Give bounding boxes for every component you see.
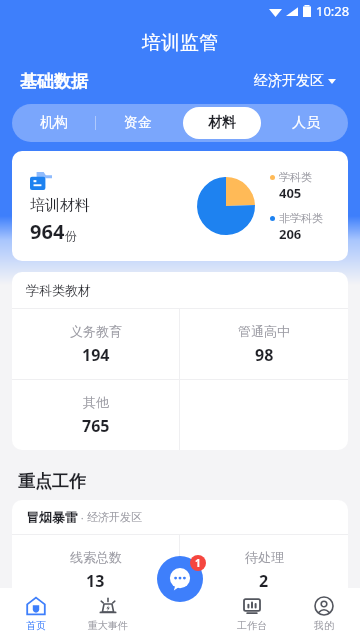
button[interactable]: 待处理 [180,535,348,605]
staticText: 10:28 [316,2,350,20]
staticText: 我的 [314,619,334,632]
staticText: · [78,510,87,525]
staticText: 其他 [83,394,109,410]
button[interactable]: 管通高中 [180,309,348,379]
staticText: 培训监管 [142,31,218,55]
button[interactable]: 培训材料 [12,151,348,261]
staticText: 重大事件 [88,619,128,632]
staticText: 义务教育 [70,323,122,339]
staticText: 管通高中 [238,323,290,339]
button[interactable]: 消息 [152,551,208,607]
staticText: 206 [279,225,302,243]
staticText: 首页 [26,619,46,632]
staticText: 培训材料 [30,196,90,215]
staticText: 405 [279,184,302,202]
button[interactable]: 材料 [183,107,261,139]
button[interactable]: 重大事件 [72,588,144,640]
button[interactable]: 义务教育 [12,309,179,379]
staticText: 98 [255,344,274,366]
button[interactable]: 线索总数 [12,535,179,605]
staticText: 学科类教材 [26,282,91,298]
staticText: 经济开发区 [87,510,142,524]
staticText: 冒烟暴雷 [26,509,78,525]
button[interactable]: 工作台 [216,588,288,640]
staticText: 经济开发区 [254,72,324,90]
button[interactable]: 首页 [0,588,72,640]
staticText: 2 [259,570,269,592]
staticText: 765 [82,415,110,437]
staticText: 人员 [292,114,320,132]
button[interactable]: 冒烟暴雷 [12,500,348,605]
staticText: 1 [195,556,201,570]
button[interactable]: 人员 [267,107,345,139]
staticText: 964 [30,218,65,245]
staticText: 重点工作 [18,471,86,492]
staticText: 机构 [40,114,68,132]
staticText: 材料 [208,114,236,132]
staticText: 工作台 [237,619,267,632]
staticText: 份 [65,228,77,243]
staticText: 待处理 [245,549,284,565]
staticText: 194 [82,344,110,366]
staticText: 非学科类 [279,211,323,225]
staticText: 13 [86,570,105,592]
button[interactable]: 资金 [99,107,177,139]
staticText: 基础数据 [20,71,88,92]
staticText: 资金 [124,114,152,132]
staticText: 学科类 [279,170,312,184]
button[interactable]: 其他 [12,380,179,450]
button[interactable]: 机构 [15,107,92,139]
button[interactable]: 经济开发区 [250,68,340,94]
staticText: 线索总数 [70,549,122,565]
button[interactable]: 我的 [288,588,360,640]
